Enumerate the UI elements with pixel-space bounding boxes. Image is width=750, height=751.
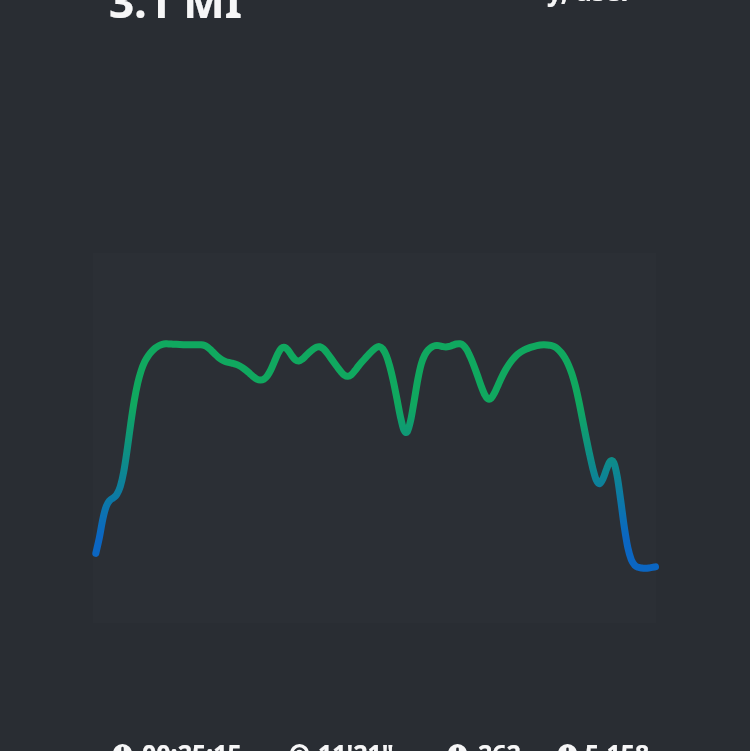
button[interactable]: Steps 5,158 — [558, 736, 650, 751]
button[interactable]: Duration 00:25:15 — [113, 736, 242, 751]
staticText: 00:25:15 — [142, 736, 242, 751]
staticText: y, user — [547, 0, 633, 8]
staticText: 5,158 — [585, 736, 650, 751]
button[interactable]: Pace 11'21" — [290, 736, 394, 751]
button[interactable]: Pace chart — [93, 253, 656, 623]
staticText: 3.1 MI — [109, 0, 242, 31]
staticText: 262 — [478, 736, 521, 751]
staticText: 11'21" — [318, 736, 394, 751]
button[interactable]: Calories 262 — [448, 736, 521, 751]
